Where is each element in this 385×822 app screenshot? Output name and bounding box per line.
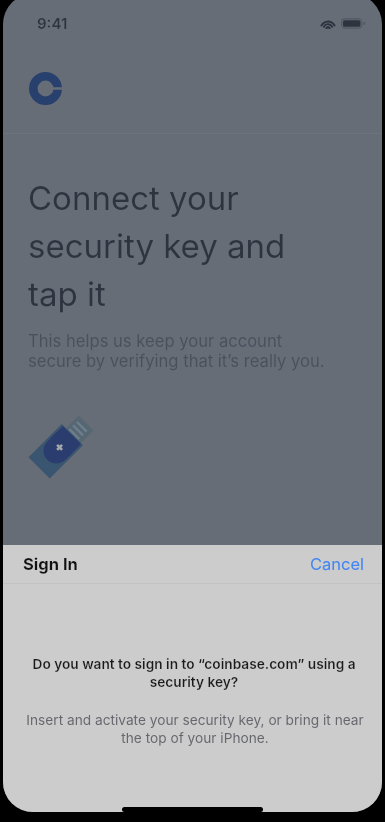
staticText: 9:41 xyxy=(37,14,68,32)
staticText: Cancel xyxy=(310,554,365,574)
button[interactable]: Cancel xyxy=(310,554,365,574)
staticText: Sign In xyxy=(23,554,78,574)
button[interactable]: Coinbase xyxy=(29,72,62,105)
staticText: Insert and activate your security key, o… xyxy=(8,712,382,747)
staticText: This helps us keep your account secure b… xyxy=(28,331,325,371)
staticText: Do you want to sign in to “coinbase.com”… xyxy=(6,656,382,691)
staticText: Connect your security key and tap it xyxy=(28,178,286,314)
